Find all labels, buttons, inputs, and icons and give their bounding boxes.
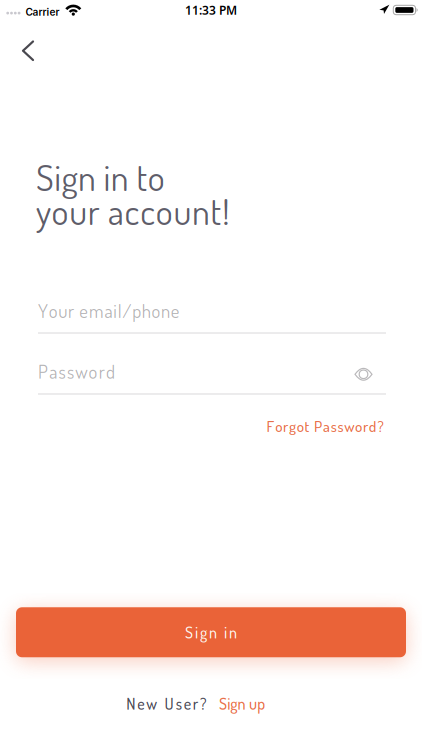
staticText: a [104, 299, 112, 322]
staticText: i [224, 622, 227, 642]
staticText: p [257, 693, 265, 713]
staticText: / [122, 299, 131, 322]
staticText: ? [200, 693, 207, 713]
staticText: u [69, 188, 87, 233]
staticText: P [314, 416, 322, 436]
staticText: N [126, 693, 135, 713]
staticText: m [89, 299, 104, 322]
staticText: g [200, 622, 207, 642]
staticText: i [113, 299, 117, 322]
staticText: w [75, 359, 87, 383]
staticText: h [142, 299, 151, 322]
staticText: o [156, 188, 173, 233]
staticText: o [52, 188, 69, 233]
staticText: s [67, 359, 74, 383]
staticText: n [237, 693, 245, 713]
staticText: n [209, 622, 217, 642]
staticText: r [193, 693, 198, 713]
staticText: r [283, 416, 288, 436]
staticText: S [185, 622, 193, 642]
staticText: g [289, 416, 296, 436]
staticText: n [229, 622, 237, 642]
staticText: t [304, 416, 309, 436]
staticText: o [297, 416, 304, 436]
staticText: Carrier [26, 6, 60, 18]
staticText: U [164, 693, 173, 713]
staticText: g [62, 154, 78, 199]
staticText: w [146, 693, 157, 713]
staticText: a [323, 416, 330, 436]
staticText: d [369, 416, 377, 436]
staticText: u [58, 299, 67, 322]
staticText: S [219, 693, 227, 713]
staticText: s [331, 416, 337, 436]
staticText: p [132, 299, 141, 322]
staticText: o [275, 416, 282, 436]
staticText: n [111, 154, 129, 199]
staticText: i [227, 693, 230, 713]
staticText: l [118, 299, 122, 322]
staticText: e [137, 693, 144, 713]
staticText: o [151, 299, 160, 322]
staticText: n [78, 154, 96, 199]
staticText: Y [38, 299, 48, 322]
button[interactable]: F [266, 416, 383, 436]
staticText: r [68, 299, 74, 322]
staticText: e [171, 299, 180, 322]
staticText: P [38, 359, 48, 383]
staticText: r [99, 359, 105, 383]
staticText: o [355, 416, 362, 436]
staticText: e [184, 693, 191, 713]
staticText: t [211, 188, 222, 233]
staticText: u [173, 188, 191, 233]
staticText: F [266, 416, 274, 436]
staticText: r [88, 188, 100, 233]
staticText: i [195, 622, 198, 642]
staticText: o [88, 359, 97, 383]
staticText: ! [222, 188, 229, 233]
staticText: 11:33 PM [185, 2, 237, 18]
staticText: r [363, 416, 368, 436]
staticText: y [36, 188, 51, 233]
staticText: i [54, 154, 61, 199]
staticText: s [59, 359, 66, 383]
staticText: d [106, 359, 115, 383]
staticText: o [49, 299, 58, 322]
staticText: u [249, 693, 257, 713]
staticText: e [79, 299, 88, 322]
staticText: o [148, 154, 165, 199]
staticText [100, 188, 107, 233]
button[interactable]: S [219, 693, 265, 713]
staticText: n [161, 299, 170, 322]
staticText: n [192, 188, 210, 233]
button[interactable]: Show password [353, 360, 374, 382]
staticText: S [36, 154, 54, 199]
staticText: i [103, 154, 110, 199]
staticText: c [140, 188, 155, 233]
staticText: t [136, 154, 147, 199]
button[interactable]: S [16, 607, 406, 657]
staticText: c [125, 188, 140, 233]
staticText: a [49, 359, 57, 383]
staticText: s [176, 693, 182, 713]
staticText: g [230, 693, 237, 713]
button[interactable]: Back [15, 35, 41, 66]
staticText: w [344, 416, 354, 436]
staticText: a [108, 188, 124, 233]
staticText: ? [377, 416, 383, 436]
staticText: s [337, 416, 343, 436]
